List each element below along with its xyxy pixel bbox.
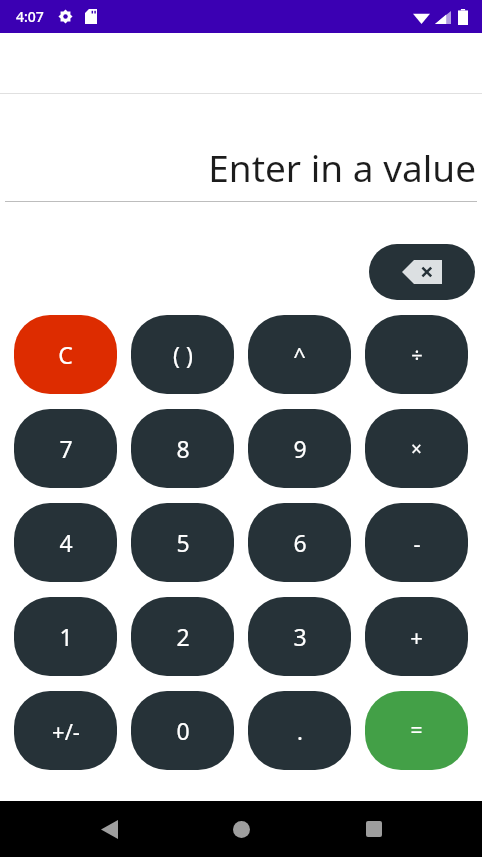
staticText: = [410, 716, 423, 745]
button[interactable]: 4 [14, 503, 117, 582]
staticText: 8 [176, 433, 190, 464]
button[interactable]: . [248, 691, 351, 770]
button[interactable]: Back [85, 805, 133, 853]
staticText: + [410, 622, 423, 652]
staticText: ^ [293, 340, 306, 370]
button[interactable]: Home [217, 805, 265, 853]
staticText: 6 [293, 527, 307, 558]
button[interactable]: 8 [131, 409, 234, 488]
staticText: 7 [59, 433, 73, 464]
staticText: 4 [59, 527, 73, 558]
staticText: ÷ [411, 341, 423, 368]
button[interactable]: - [365, 503, 468, 582]
staticText: - [413, 528, 421, 558]
staticText: 9 [293, 433, 307, 464]
button[interactable]: Recent apps [350, 805, 398, 853]
button[interactable]: C [14, 315, 117, 394]
button[interactable]: 6 [248, 503, 351, 582]
staticText: 5 [176, 527, 190, 558]
button[interactable]: × [365, 409, 468, 488]
staticText: +/- [52, 716, 80, 746]
button[interactable]: ÷ [365, 315, 468, 394]
button[interactable]: 1 [14, 597, 117, 676]
button[interactable]: ( ) [131, 315, 234, 394]
button[interactable]: 2 [131, 597, 234, 676]
button[interactable]: +/- [14, 691, 117, 770]
button[interactable]: 7 [14, 409, 117, 488]
button[interactable]: = [365, 691, 468, 770]
button[interactable]: 3 [248, 597, 351, 676]
staticText: 4:07 [16, 7, 44, 26]
staticText: 3 [293, 621, 307, 652]
button[interactable]: ^ [248, 315, 351, 394]
staticText: Enter in a value [0, 142, 476, 192]
button[interactable]: Backspace [369, 244, 475, 300]
button[interactable]: + [365, 597, 468, 676]
button[interactable]: 5 [131, 503, 234, 582]
staticText: C [58, 339, 73, 370]
staticText: × [411, 436, 422, 462]
staticText: 1 [59, 621, 73, 652]
button[interactable]: 9 [248, 409, 351, 488]
staticText: 0 [176, 715, 190, 746]
staticText: 2 [176, 621, 190, 652]
button[interactable]: 0 [131, 691, 234, 770]
staticText: . [297, 716, 303, 746]
staticText: ( ) [173, 339, 193, 370]
